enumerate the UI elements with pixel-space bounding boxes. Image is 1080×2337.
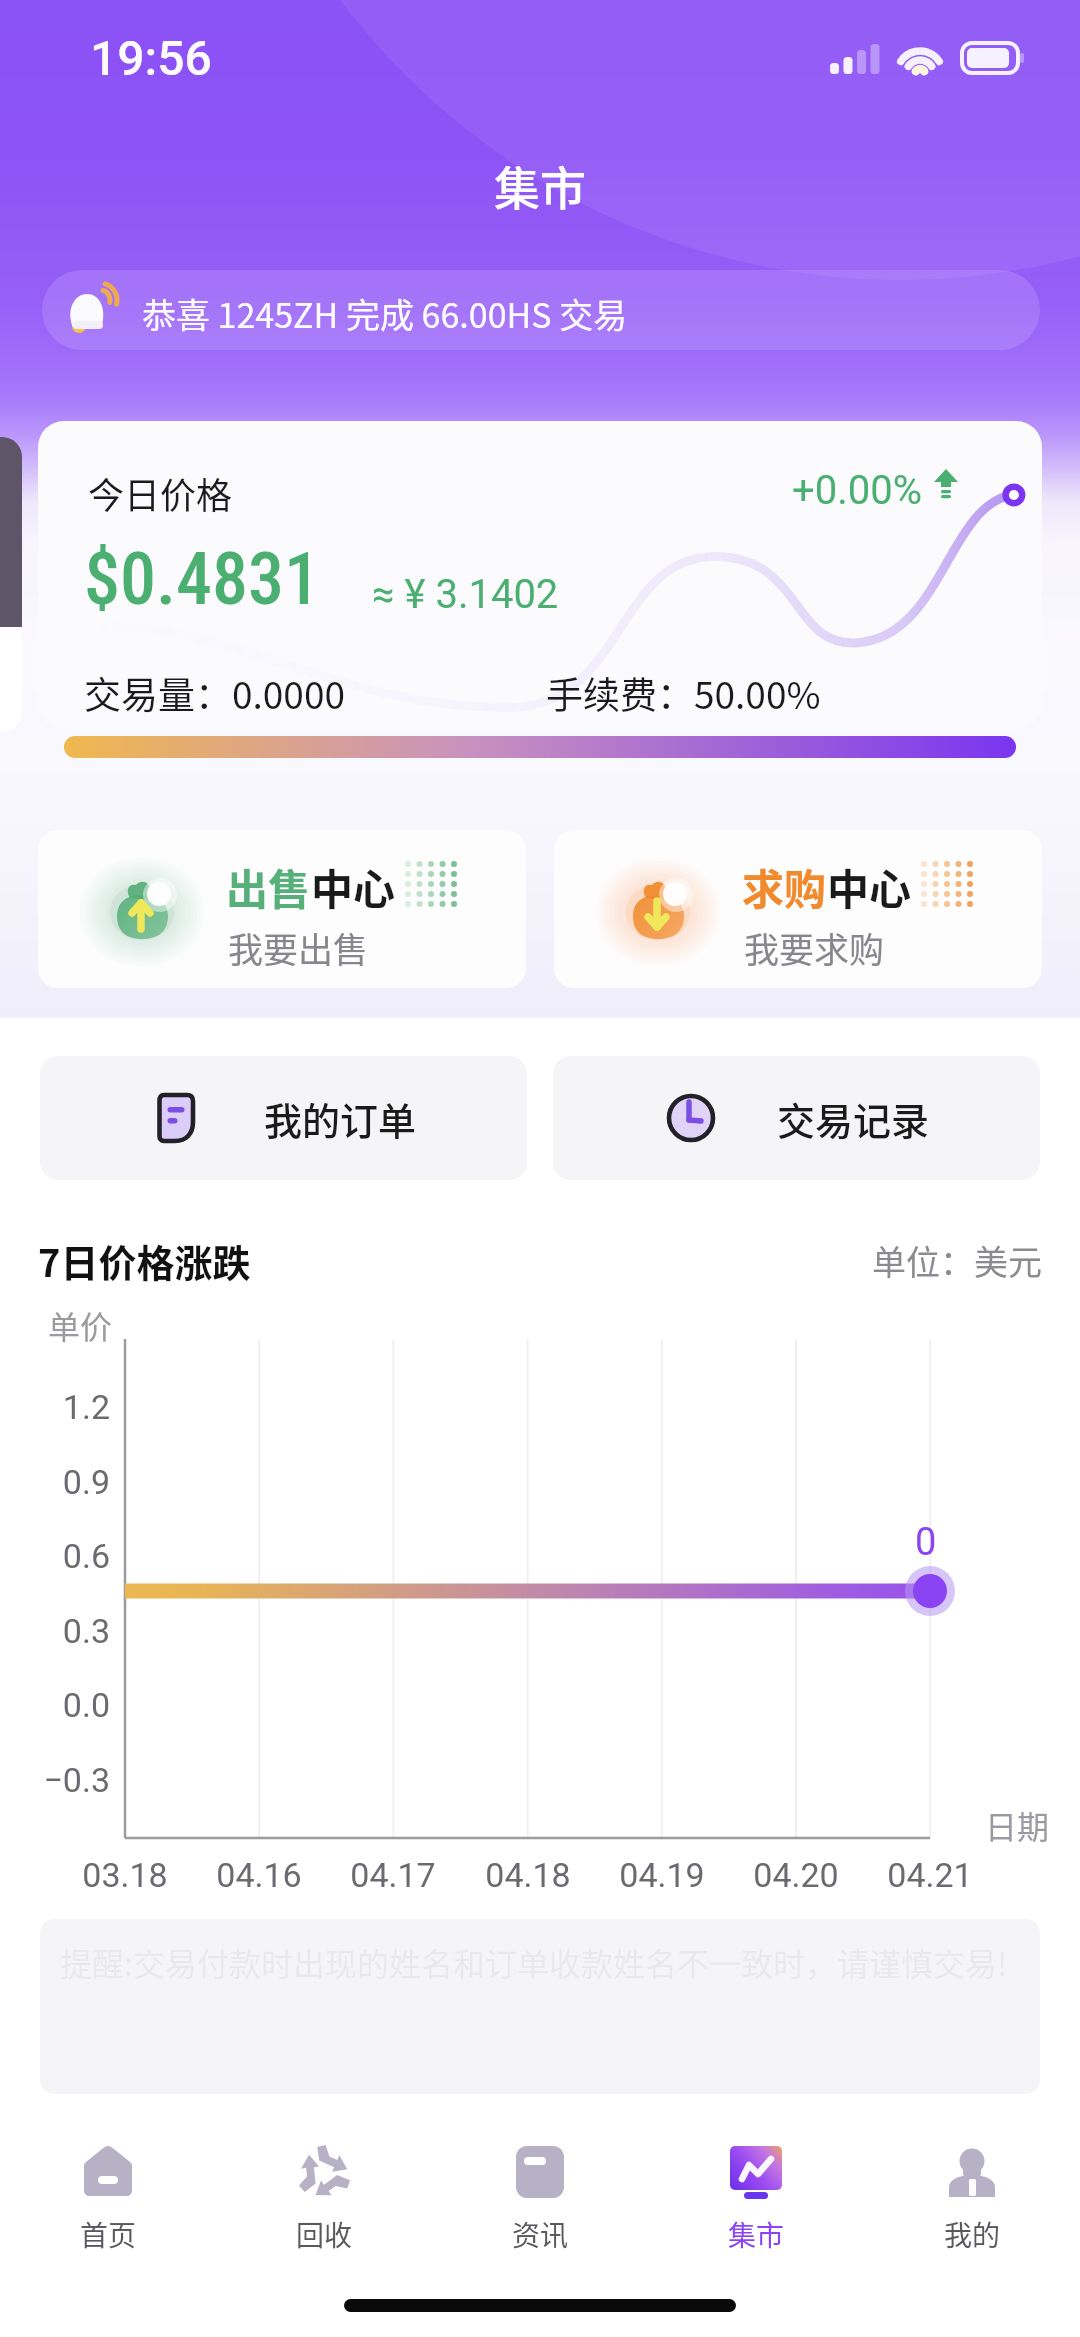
staticText: 出售 — [226, 856, 311, 917]
staticText: 我要求购 — [744, 922, 885, 973]
button[interactable]: 回收 — [216, 2123, 432, 2255]
staticText: 回收 — [296, 2214, 353, 2255]
staticText: 中心 — [311, 856, 396, 917]
staticText: 首页 — [80, 2214, 137, 2255]
staticText: 提醒:交易付款时出现的姓名和订单收款姓名不一致时，请谨慎交易! — [60, 1939, 1008, 1985]
staticText: 我的订单 — [264, 1091, 417, 1146]
staticText: 19:56 — [90, 30, 212, 86]
button[interactable]: 首页 — [0, 2123, 216, 2255]
staticText: 中心 — [827, 856, 912, 917]
staticText: 0 — [915, 1520, 937, 1565]
staticText: 04.19 — [582, 1855, 742, 1895]
staticText: 0.9 — [0, 1462, 110, 1502]
staticText: $0.4831 — [84, 537, 321, 621]
staticText: 04.16 — [179, 1855, 339, 1895]
staticText: ≈ ¥ 3.1402 — [372, 571, 559, 618]
staticText: 集市 — [728, 2214, 785, 2255]
staticText: 单位：美元 — [872, 1236, 1042, 1285]
staticText: −0.3 — [0, 1760, 110, 1800]
staticText: 1.2 — [0, 1387, 110, 1427]
staticText: 单价 — [48, 1302, 113, 1348]
staticText: 交易记录 — [777, 1091, 930, 1146]
staticText: 集市 — [494, 152, 586, 219]
staticText: 04.18 — [448, 1855, 608, 1895]
button[interactable]: 我的 — [864, 2123, 1080, 2255]
staticText: 手续费：50.00% — [546, 666, 821, 720]
button[interactable]: Customer service — [0, 437, 22, 627]
staticText: 04.17 — [313, 1855, 473, 1895]
staticText: 0.3 — [0, 1611, 110, 1651]
staticText: 7日价格涨跌 — [38, 1233, 251, 1288]
staticText: 资讯 — [512, 2214, 569, 2255]
staticText: 04.21 — [850, 1855, 1010, 1895]
button[interactable]: 出售 — [38, 830, 526, 988]
staticText: 我要出售 — [228, 922, 369, 973]
staticText: 今日价格 — [88, 467, 233, 519]
staticText: 04.20 — [716, 1855, 876, 1895]
staticText: 日期 — [985, 1802, 1050, 1848]
staticText: 0.0 — [0, 1685, 110, 1725]
button[interactable]: 恭喜 1245ZH 完成 66.00HS 交易 — [42, 270, 1040, 350]
staticText: 03.18 — [45, 1855, 205, 1895]
staticText: +0.00% — [792, 467, 922, 514]
button[interactable]: 集市 — [648, 2123, 864, 2255]
staticText: 交易量：0.0000 — [84, 666, 345, 720]
button[interactable]: 资讯 — [432, 2123, 648, 2255]
staticText: 我的 — [944, 2214, 1001, 2255]
staticText: 求购 — [742, 856, 827, 917]
button[interactable]: 交易记录 — [553, 1056, 1040, 1180]
button[interactable]: 求购 — [554, 830, 1042, 988]
staticText: 恭喜 1245ZH 完成 66.00HS 交易 — [142, 289, 628, 338]
button[interactable]: 我的订单 — [40, 1056, 527, 1180]
staticText: 0.6 — [0, 1536, 110, 1576]
